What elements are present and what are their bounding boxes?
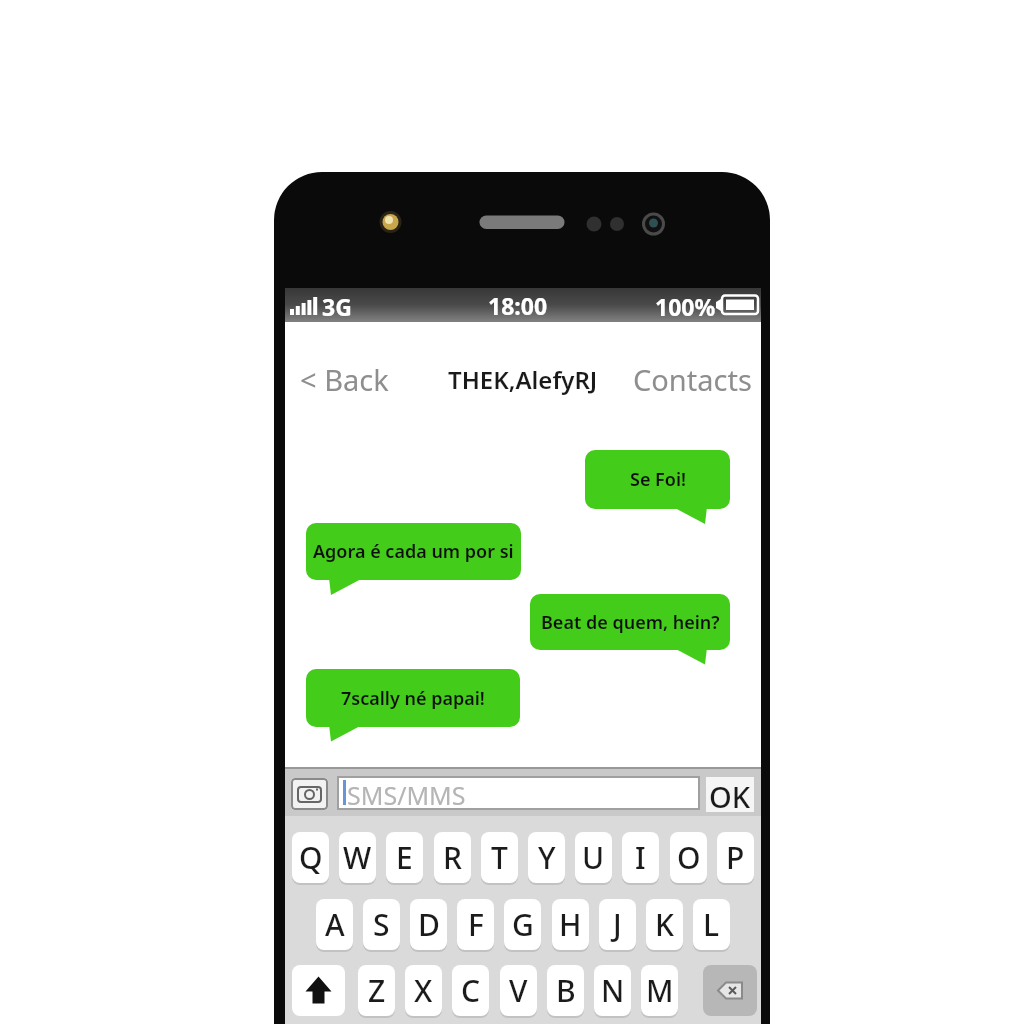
button[interactable]: I	[622, 832, 659, 883]
staticText: J	[613, 904, 622, 945]
staticText: S	[373, 904, 390, 945]
button[interactable]: 7scally né papai!	[306, 669, 520, 727]
staticText: Z	[368, 970, 386, 1011]
button[interactable]	[703, 965, 757, 1016]
staticText: Contacts	[633, 360, 752, 396]
staticText: X	[414, 970, 433, 1011]
staticText: O	[677, 837, 701, 878]
staticText: Q	[299, 837, 323, 878]
staticText: THEK,AlefyRJ	[448, 363, 598, 396]
staticText: 7scally né papai!	[341, 686, 485, 711]
staticText: < Back	[300, 360, 389, 399]
staticText: K	[655, 904, 674, 945]
button[interactable]: X	[405, 965, 442, 1016]
staticText: R	[443, 837, 462, 878]
staticText: D	[418, 904, 440, 945]
staticText: N	[601, 970, 625, 1011]
staticText: W	[343, 837, 372, 878]
button[interactable]: B	[547, 965, 584, 1016]
staticText: U	[582, 837, 605, 878]
button[interactable]: A	[316, 899, 353, 950]
staticText: Beat de quem, hein?	[541, 610, 720, 635]
staticText: Se Foi!	[630, 467, 686, 492]
staticText: SMS/MMS	[347, 778, 466, 812]
staticText: B	[556, 970, 576, 1011]
staticText: I	[635, 837, 646, 878]
button[interactable]	[292, 965, 345, 1016]
staticText: H	[559, 904, 582, 945]
button[interactable]: G	[504, 899, 541, 950]
button[interactable]: K	[646, 899, 683, 950]
button[interactable]: C	[452, 965, 489, 1016]
button[interactable]: R	[434, 832, 471, 883]
button[interactable]: J	[599, 899, 636, 950]
button[interactable]: D	[410, 899, 447, 950]
staticText: 100%	[655, 291, 716, 322]
staticText: 3G	[322, 291, 352, 322]
staticText: F	[468, 904, 484, 945]
staticText: P	[726, 837, 745, 878]
button[interactable]: V	[500, 965, 537, 1016]
staticText: Y	[538, 837, 556, 878]
button[interactable]: OK	[706, 777, 754, 812]
button[interactable]: Q	[292, 832, 329, 883]
staticText: 18:00	[488, 290, 548, 321]
button[interactable]: Z	[358, 965, 395, 1016]
staticText: E	[396, 837, 413, 878]
staticText: T	[491, 837, 508, 878]
staticText: A	[325, 904, 345, 945]
button[interactable]: E	[386, 832, 423, 883]
button[interactable]: H	[552, 899, 589, 950]
button[interactable]: L	[693, 899, 730, 950]
button[interactable]	[291, 778, 328, 810]
staticText: V	[509, 970, 528, 1011]
button[interactable]: M	[641, 965, 678, 1016]
button[interactable]: N	[594, 965, 631, 1016]
button[interactable]: Agora é cada um por si	[306, 523, 521, 580]
button[interactable]: SMS/MMS	[337, 776, 700, 810]
staticText: OK	[709, 777, 751, 812]
staticText: Agora é cada um por si	[313, 539, 514, 564]
button[interactable]: W	[339, 832, 376, 883]
button[interactable]: O	[670, 832, 707, 883]
button[interactable]: Contacts	[590, 360, 752, 396]
button[interactable]: P	[717, 832, 754, 883]
button[interactable]: S	[363, 899, 400, 950]
button[interactable]: U	[575, 832, 612, 883]
staticText: C	[461, 970, 481, 1011]
staticText: M	[646, 970, 674, 1011]
staticText: G	[512, 904, 534, 945]
button[interactable]: F	[457, 899, 494, 950]
staticText: L	[703, 904, 720, 945]
button[interactable]: Y	[528, 832, 565, 883]
button[interactable]: Beat de quem, hein?	[530, 594, 730, 650]
button[interactable]: Se Foi!	[585, 450, 730, 509]
button[interactable]: < Back	[300, 360, 389, 399]
button[interactable]: T	[481, 832, 518, 883]
